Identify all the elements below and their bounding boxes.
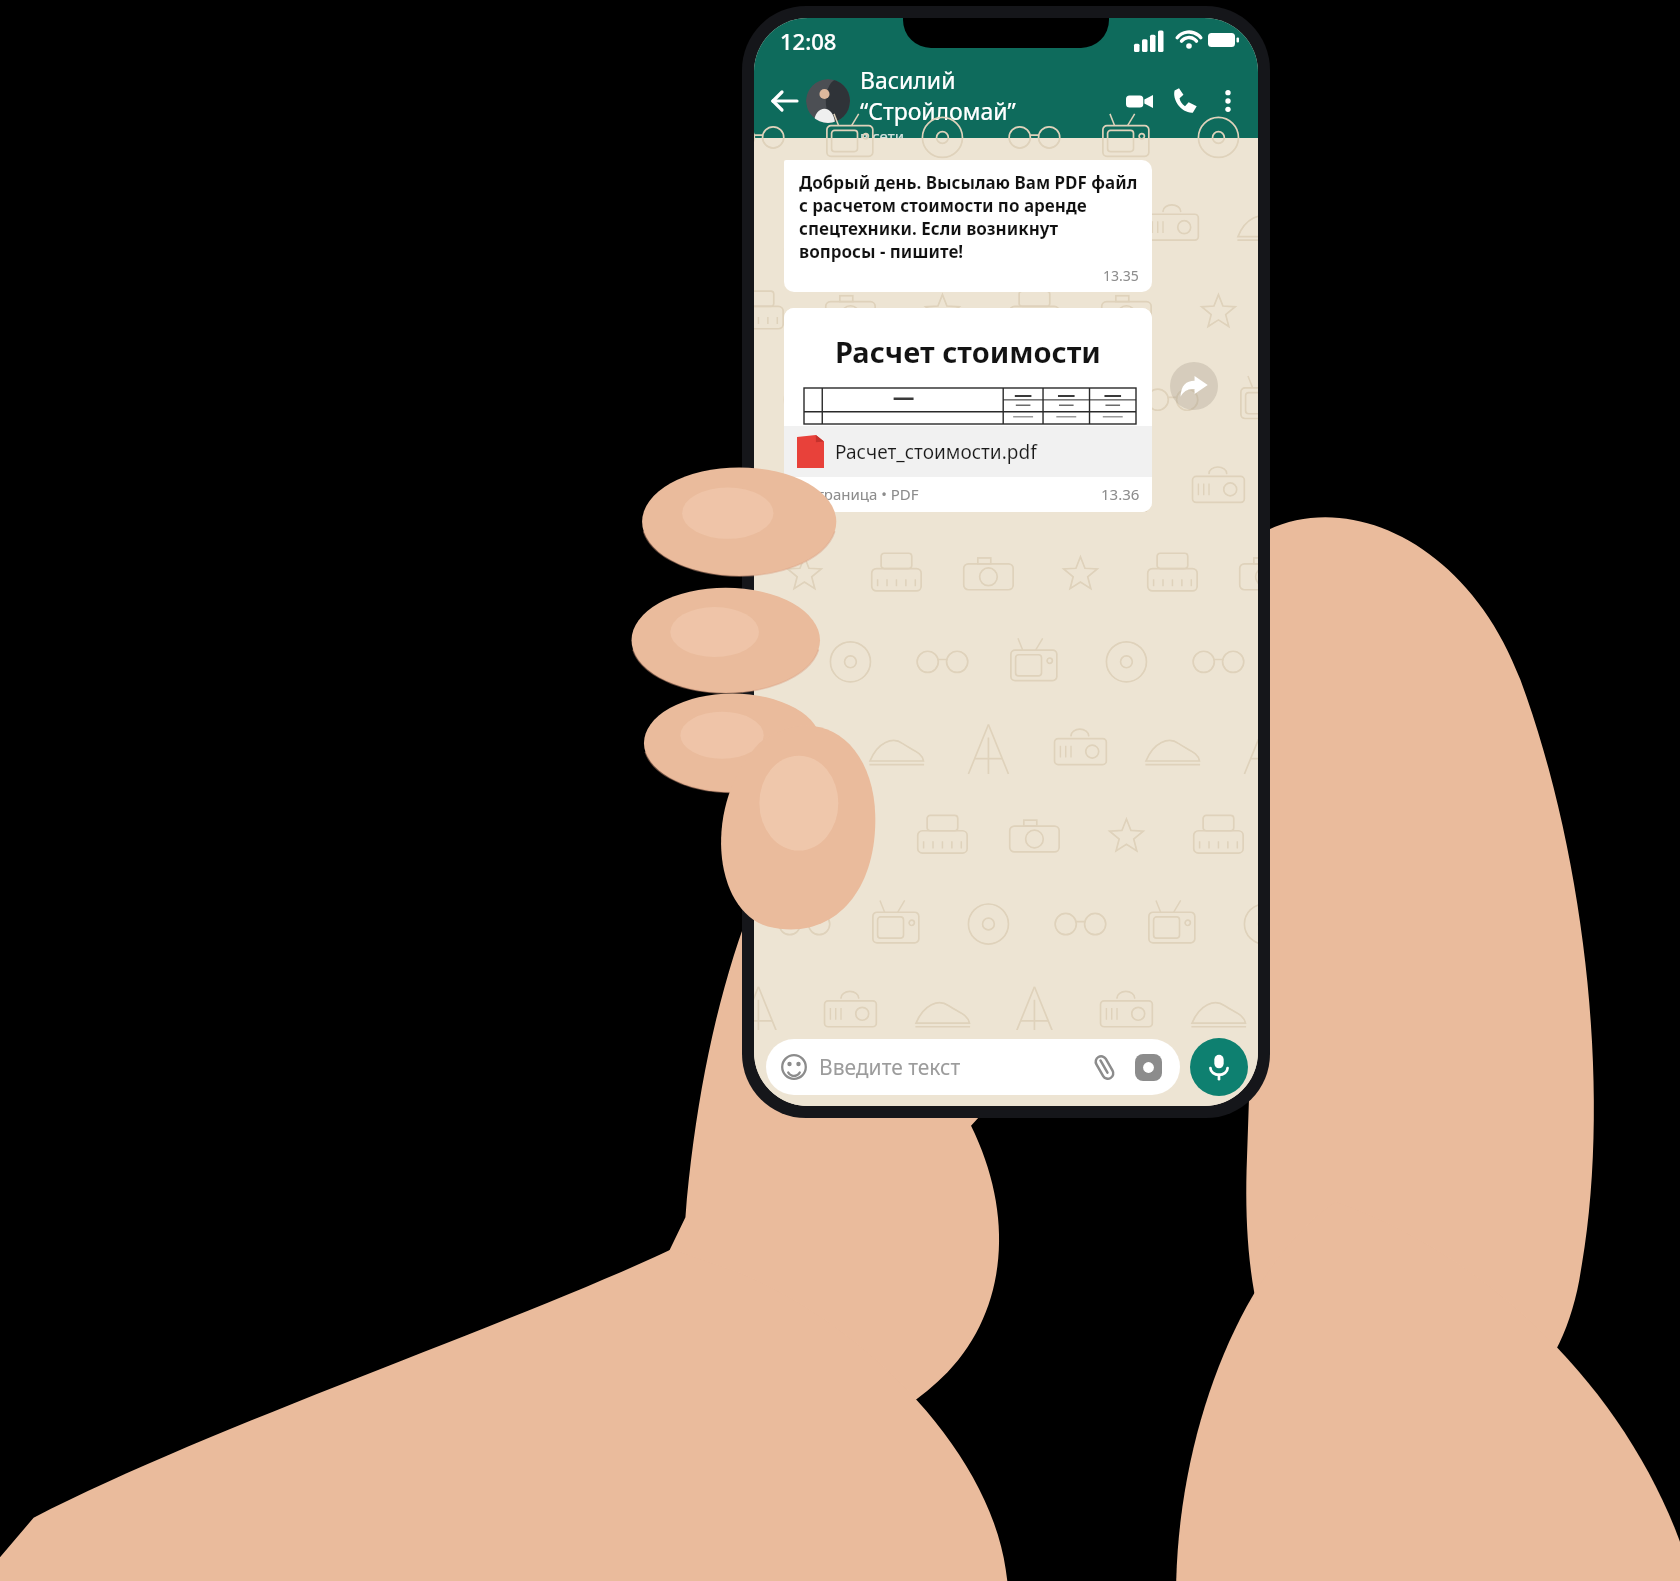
- staticText: 13.36: [1101, 484, 1140, 504]
- button[interactable]: Forward: [1170, 362, 1218, 410]
- staticText: в сети: [860, 126, 905, 138]
- button[interactable]: Добрый день. Высылаю Вам PDF файл с расч…: [784, 160, 1152, 292]
- staticText: Введите текст: [819, 1053, 961, 1082]
- button[interactable]: Camera: [1131, 1050, 1165, 1084]
- button[interactable]: More options: [1208, 81, 1248, 121]
- button[interactable]: Василий “Стройломай”: [860, 64, 1116, 138]
- staticText: 12:08: [780, 26, 837, 56]
- button[interactable]: Attach file: [1087, 1050, 1121, 1084]
- button[interactable]: Profile photo: [806, 79, 850, 123]
- staticText: 13.35: [1103, 266, 1139, 285]
- staticText: Расчет стоимости: [835, 332, 1101, 371]
- button[interactable]: Введите текст: [766, 1039, 1180, 1095]
- staticText: Добрый день. Высылаю Вам PDF файл с расч…: [799, 171, 1139, 263]
- staticText: Расчет_стоимости.pdf: [835, 439, 1037, 465]
- button[interactable]: Расчет стоимости: [784, 308, 1152, 512]
- staticText: Василий “Стройломай”: [860, 64, 1116, 126]
- button[interactable]: Voice message: [1190, 1038, 1248, 1096]
- button[interactable]: Back: [762, 79, 806, 123]
- staticText: 1 страница • PDF: [797, 484, 919, 504]
- button[interactable]: Call: [1162, 78, 1208, 124]
- button[interactable]: Video call: [1116, 78, 1162, 124]
